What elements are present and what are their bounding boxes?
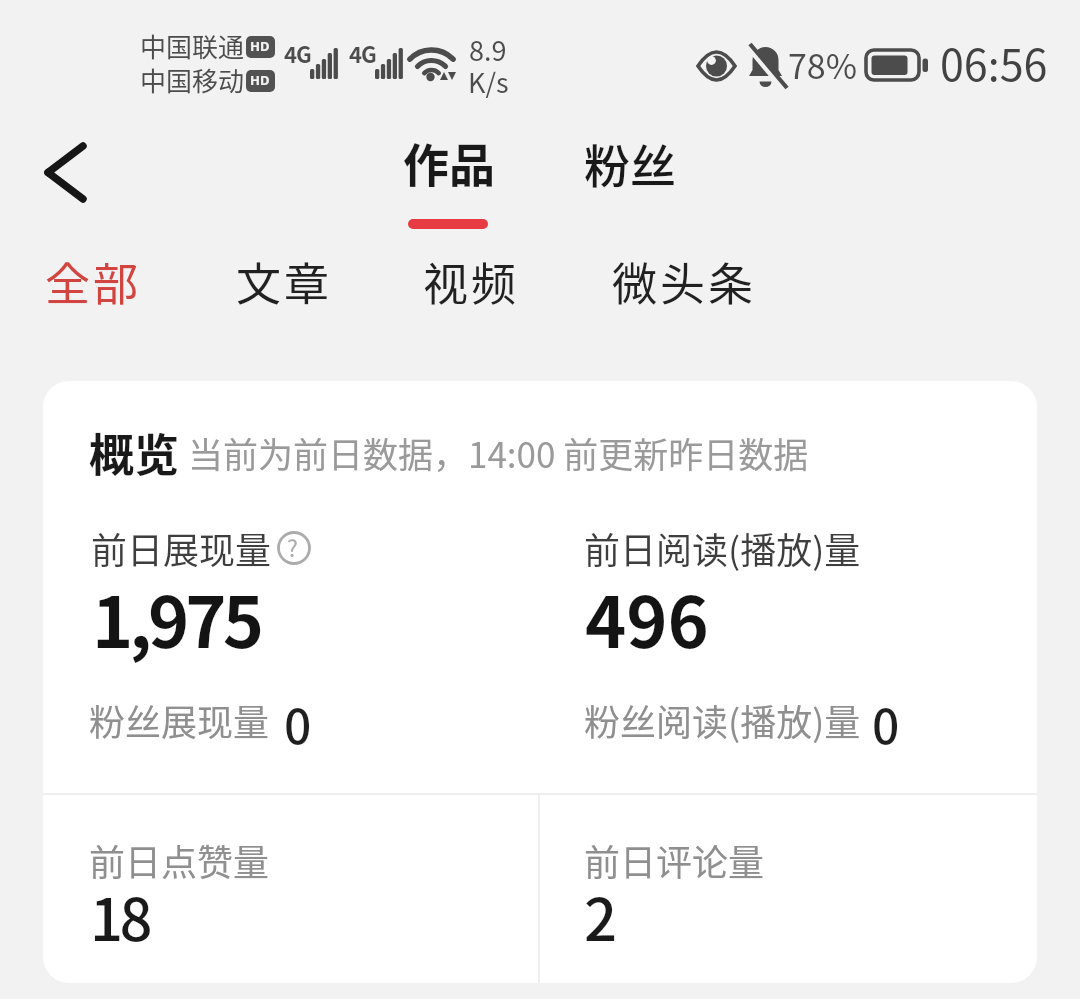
staticText: 18 (90, 874, 150, 958)
button[interactable]: 微头条 (0, 0, 145, 65)
staticText: 4G (349, 37, 376, 69)
button[interactable] (540, 795, 1035, 981)
staticText: 496 (585, 567, 709, 668)
staticText: HD (250, 37, 270, 55)
staticText: ? (287, 530, 298, 563)
staticText: 前日阅读(播放)量 (584, 522, 861, 574)
staticText: 1,975 (92, 567, 260, 668)
staticText: K/s (468, 62, 509, 101)
staticText: 8.9 (469, 30, 507, 69)
staticText: 78% (788, 40, 858, 89)
staticText: 中国联通 (140, 27, 245, 65)
staticText: 粉丝阅读(播放)量 (584, 694, 861, 746)
staticText: 前日评论量 (584, 834, 765, 886)
button[interactable] (28, 132, 108, 212)
staticText: 2 (584, 874, 618, 958)
staticText: 06:56 (940, 31, 1048, 93)
staticText: 当前为前日数据，14:00 前更新昨日数据 (188, 427, 809, 478)
staticText: 前日展现量 (91, 522, 272, 574)
staticText: 中国移动 (140, 61, 245, 99)
staticText: 概览 (89, 420, 180, 485)
staticText: 0 (284, 688, 312, 758)
button[interactable] (45, 795, 538, 981)
staticText: 前日点赞量 (89, 834, 270, 886)
staticText: 粉丝展现量 (89, 694, 270, 746)
staticText: HD (250, 71, 270, 89)
staticText: 0 (872, 688, 900, 758)
staticText: 4G (284, 37, 311, 69)
